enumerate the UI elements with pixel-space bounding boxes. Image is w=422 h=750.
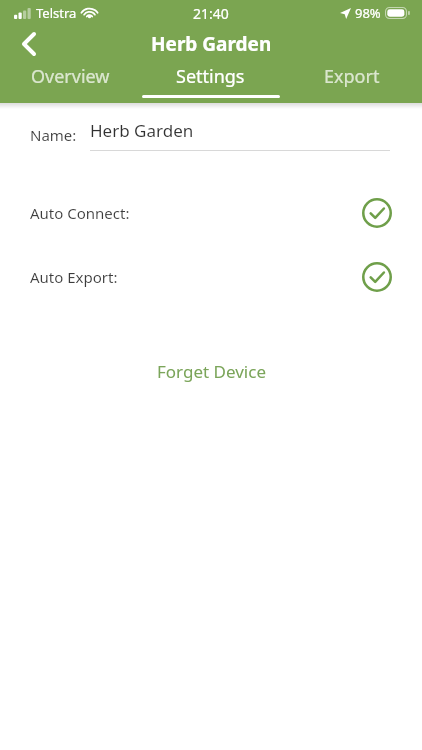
staticText: 21:40 — [193, 4, 229, 23]
other: Auto Connect enabled — [362, 198, 392, 228]
staticText: Herb Garden — [151, 31, 272, 57]
button[interactable]: Overview — [0, 62, 140, 103]
staticText: Auto Export: — [30, 267, 118, 287]
staticText: Export — [324, 64, 380, 89]
button[interactable]: Auto Export: — [0, 254, 422, 300]
button[interactable]: Auto Connect: — [0, 190, 422, 236]
staticText: Herb Garden — [90, 119, 194, 142]
staticText: Auto Connect: — [30, 203, 130, 223]
staticText: 98% — [355, 4, 381, 22]
button[interactable]: Settings — [140, 62, 281, 103]
button[interactable]: Export — [281, 62, 422, 103]
staticText: Settings — [176, 64, 245, 89]
staticText: Forget Device — [157, 360, 266, 383]
staticText: Overview — [31, 64, 110, 89]
button[interactable]: Forget Device — [0, 354, 422, 388]
staticText: Name: — [30, 125, 77, 145]
other: Auto Export enabled — [362, 262, 392, 292]
staticText: Telstra — [36, 4, 77, 22]
button[interactable]: Back — [12, 27, 46, 61]
